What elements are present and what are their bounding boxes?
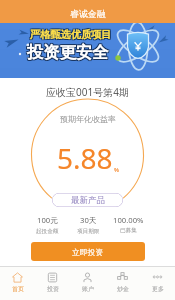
- staticText: 严格甄选优质项目: [31, 28, 113, 41]
- staticText: 投资更安全: [26, 41, 108, 62]
- staticText: 立即投资: [72, 247, 104, 257]
- staticText: 投资更安全: [28, 41, 110, 62]
- staticText: 投资更安全: [27, 41, 109, 62]
- staticText: 账户: [82, 285, 94, 293]
- staticText: 首页: [12, 285, 24, 293]
- button[interactable]: 立即投资: [31, 242, 145, 261]
- staticText: 5.88: [57, 139, 113, 177]
- staticText: 严格甄选优质项目: [30, 29, 112, 42]
- button[interactable]: 账户: [70, 267, 105, 300]
- staticText: 更多: [152, 285, 164, 293]
- staticText: 投资更安全: [27, 43, 109, 64]
- staticText: 项目期限: [77, 228, 100, 235]
- staticText: 已募集: [120, 227, 137, 234]
- staticText: 严格甄选优质项目: [31, 29, 113, 42]
- staticText: 投资更安全: [26, 42, 108, 63]
- staticText: 严格甄选优质项目: [30, 27, 112, 40]
- staticText: 100.00%: [113, 215, 144, 225]
- staticText: 投资更安全: [28, 42, 110, 63]
- staticText: 严格甄选优质项目: [29, 29, 111, 42]
- staticText: 严格甄选优质项目: [29, 27, 111, 40]
- staticText: 应收宝001号第4期: [46, 85, 129, 99]
- staticText: 严格甄选优质项目: [31, 27, 113, 40]
- button[interactable]: 投资: [35, 267, 70, 300]
- staticText: 睿诚金融: [70, 8, 106, 19]
- staticText: 投资更安全: [27, 42, 109, 63]
- staticText: 投资: [47, 285, 59, 293]
- staticText: 投资更安全: [28, 43, 110, 64]
- staticText: 100元: [37, 215, 58, 226]
- staticText: 投资更安全: [26, 43, 108, 64]
- button[interactable]: 炒金: [105, 267, 140, 300]
- staticText: 严格甄选优质项目: [29, 28, 111, 41]
- staticText: %: [114, 166, 119, 174]
- staticText: 最新产品: [71, 195, 105, 206]
- staticText: 起投金额: [36, 228, 59, 235]
- staticText: 严格甄选优质项目: [30, 28, 112, 41]
- button[interactable]: 首页: [0, 267, 35, 300]
- button[interactable]: 更多: [140, 267, 175, 300]
- staticText: 30天: [80, 215, 97, 226]
- staticText: 炒金: [117, 285, 129, 293]
- staticText: 预期年化收益率: [60, 114, 116, 124]
- button[interactable]: 最新产品: [52, 193, 123, 207]
